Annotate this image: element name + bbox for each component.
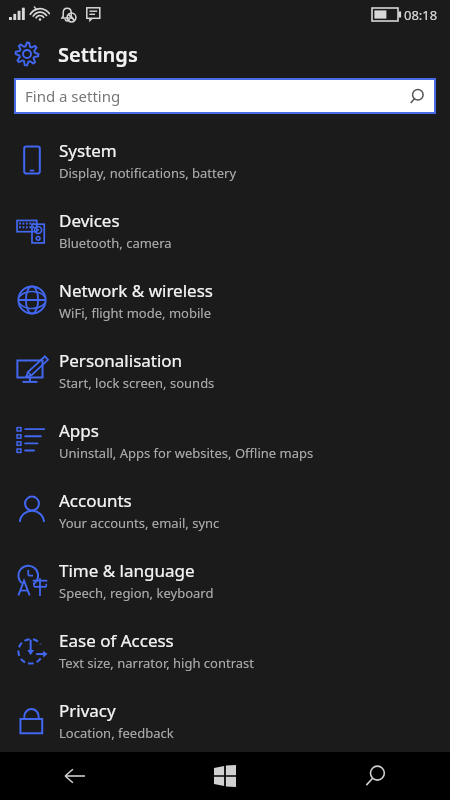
staticText: Text size, narrator, high contrast	[59, 654, 254, 672]
staticText: Find a setting	[25, 86, 121, 106]
button[interactable]: Find a setting	[14, 78, 436, 114]
staticText: 08:18	[404, 6, 438, 24]
staticText: Settings	[58, 41, 138, 68]
button[interactable]: Search	[300, 752, 450, 800]
button[interactable]: Back	[0, 752, 150, 800]
staticText: System	[59, 139, 117, 162]
staticText: Apps	[59, 419, 99, 442]
staticText: Time & language	[59, 559, 195, 582]
staticText: Privacy	[59, 699, 116, 722]
staticText: Display, notifications, battery	[59, 164, 237, 182]
staticText: Devices	[59, 209, 120, 232]
staticText: Your accounts, email, sync	[59, 514, 220, 532]
button[interactable]: Start	[150, 752, 300, 800]
button[interactable]: System	[0, 125, 450, 195]
staticText: Personalisation	[59, 349, 183, 372]
staticText: Ease of Access	[59, 629, 174, 652]
staticText: WiFi, flight mode, mobile	[59, 304, 211, 322]
button[interactable]: Accounts	[0, 475, 450, 545]
staticText: Bluetooth, camera	[59, 234, 172, 252]
staticText: Accounts	[59, 489, 132, 512]
button[interactable]: Time & language	[0, 545, 450, 615]
staticText: Uninstall, Apps for websites, Offline ma…	[59, 444, 314, 462]
button[interactable]: Privacy	[0, 685, 450, 755]
button[interactable]: Devices	[0, 195, 450, 265]
staticText: Speech, region, keyboard	[59, 584, 214, 602]
button[interactable]: Apps	[0, 405, 450, 475]
button[interactable]: Network & wireless	[0, 265, 450, 335]
staticText: Start, lock screen, sounds	[59, 374, 215, 392]
staticText: Location, feedback	[59, 724, 174, 742]
button[interactable]: Ease of Access	[0, 615, 450, 685]
staticText: Network & wireless	[59, 279, 213, 302]
button[interactable]: Personalisation	[0, 335, 450, 405]
